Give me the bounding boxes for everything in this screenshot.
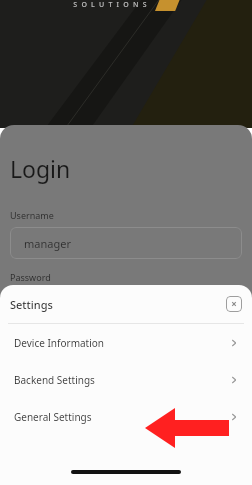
staticText: Backend Settings — [14, 373, 95, 387]
button[interactable]: General Settings — [0, 398, 252, 435]
staticText: S O L U T I O N S — [73, 0, 148, 10]
staticText: Password — [10, 271, 51, 283]
button[interactable]: Close — [226, 296, 242, 312]
button[interactable]: manager — [10, 227, 242, 259]
staticText: General Settings — [14, 410, 92, 424]
staticText: manager — [24, 236, 71, 251]
staticText: Username — [10, 209, 54, 221]
staticText: Settings — [10, 297, 53, 312]
staticText: Device Information — [14, 336, 105, 350]
staticText: Login — [10, 153, 71, 184]
button[interactable]: Device Information — [0, 324, 252, 361]
button[interactable]: Backend Settings — [0, 361, 252, 398]
